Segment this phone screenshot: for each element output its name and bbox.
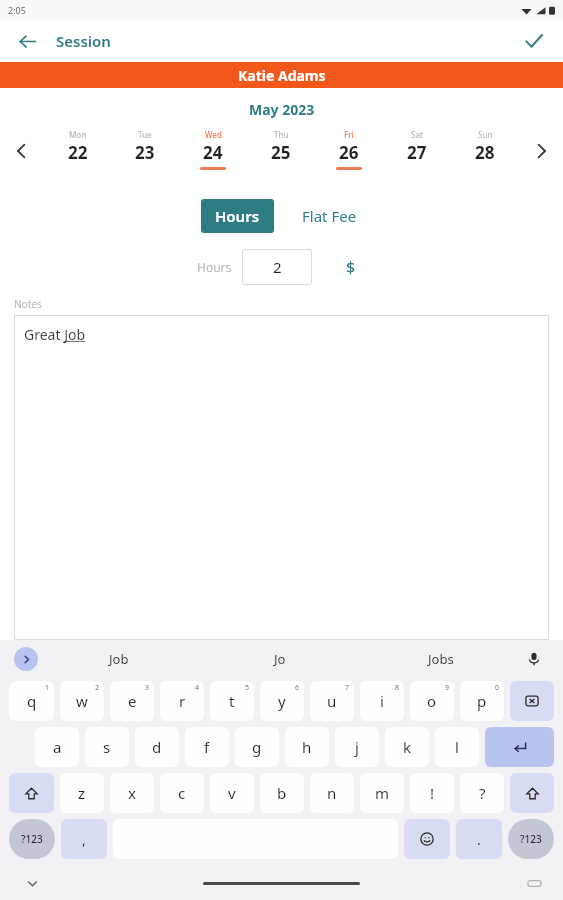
button[interactable]: n (310, 773, 354, 813)
button[interactable]: u (310, 681, 354, 721)
button[interactable]: q (9, 681, 54, 721)
staticText: x (128, 783, 136, 803)
staticText: 2 (273, 257, 282, 277)
button[interactable]: Flat Fee (296, 199, 363, 233)
button[interactable]: j (335, 727, 379, 767)
button[interactable]: a (35, 727, 79, 767)
staticText: q (27, 691, 37, 711)
button[interactable]: Enter (485, 727, 554, 767)
button[interactable]: Change keyboard (523, 872, 545, 894)
staticText: 2 (95, 683, 100, 693)
button[interactable]: Back (10, 24, 44, 58)
staticText: $ (346, 256, 356, 278)
button[interactable]: t (210, 681, 254, 721)
button[interactable]: Thu (247, 125, 315, 177)
button[interactable]: w (60, 681, 104, 721)
button[interactable]: Save (517, 24, 551, 58)
button[interactable]: Hours (201, 199, 274, 233)
staticText: 6 (295, 683, 300, 693)
staticText: 2:05 (8, 4, 26, 16)
staticText: 22 (68, 141, 88, 164)
button[interactable]: Voice input (521, 646, 547, 672)
staticText: e (128, 691, 137, 711)
staticText: n (327, 783, 337, 803)
staticText: 8 (395, 683, 400, 693)
button[interactable]: ?123 (508, 819, 554, 859)
button[interactable]: Great Job (14, 315, 549, 640)
button[interactable]: m (360, 773, 404, 813)
button[interactable]: z (60, 773, 104, 813)
staticText: Notes (14, 297, 42, 311)
button[interactable]: o (410, 681, 454, 721)
button[interactable]: ! (410, 773, 454, 813)
button[interactable]: Fri (315, 125, 383, 177)
button[interactable]: Jo (199, 640, 360, 678)
button[interactable]: Jobs (360, 640, 521, 678)
staticText: o (427, 691, 437, 711)
staticText: l (455, 737, 459, 757)
staticText: v (228, 783, 236, 803)
button[interactable]: s (85, 727, 129, 767)
staticText: 26 (339, 141, 359, 164)
button[interactable]: g (235, 727, 279, 767)
button[interactable]: Wed (179, 125, 247, 177)
button[interactable]: Job (38, 640, 199, 678)
button[interactable]: ?123 (9, 819, 55, 859)
button[interactable]: l (435, 727, 479, 767)
staticText: Job (109, 650, 129, 668)
button[interactable]: Shift (510, 773, 554, 813)
staticText: Jo (274, 650, 286, 668)
staticText: Sun (478, 129, 493, 140)
button[interactable]: f (185, 727, 229, 767)
staticText: ? (479, 783, 486, 803)
button[interactable]: Session (56, 31, 111, 51)
button[interactable]: h (285, 727, 329, 767)
staticText: Hours (197, 259, 232, 275)
staticText: 28 (475, 141, 495, 164)
button[interactable]: . (456, 819, 502, 859)
button[interactable]: d (135, 727, 179, 767)
staticText: Katie Adams (238, 66, 326, 85)
button[interactable]: c (160, 773, 204, 813)
button[interactable]: Mon (44, 125, 111, 177)
staticText: g (252, 737, 262, 757)
button[interactable]: Hide keyboard (20, 871, 44, 895)
button[interactable]: p (460, 681, 504, 721)
button[interactable]: v (210, 773, 254, 813)
button[interactable]: x (110, 773, 154, 813)
button[interactable]: y (260, 681, 304, 721)
staticText: b (277, 783, 287, 803)
staticText: Flat Fee (302, 206, 357, 226)
staticText: ?123 (520, 832, 542, 846)
staticText: p (477, 691, 487, 711)
button[interactable]: Currency (336, 252, 366, 282)
button[interactable]: k (385, 727, 429, 767)
button[interactable]: Sat (383, 125, 451, 177)
button[interactable]: Previous week (0, 125, 44, 177)
button[interactable]: Emoji (404, 819, 450, 859)
button[interactable]: Backspace (510, 681, 554, 721)
button[interactable]: 2 (242, 249, 312, 285)
staticText: 27 (407, 141, 427, 164)
button[interactable]: ? (460, 773, 504, 813)
button[interactable]: Tue (111, 125, 179, 177)
button[interactable]: i (360, 681, 404, 721)
button[interactable]: , (61, 819, 107, 859)
staticText: Hours (215, 206, 260, 226)
staticText: i (380, 691, 384, 711)
staticText: a (53, 737, 62, 757)
button[interactable]: Next week (519, 125, 563, 177)
button[interactable]: b (260, 773, 304, 813)
button[interactable]: e (110, 681, 154, 721)
button[interactable]: Sun (451, 125, 519, 177)
button[interactable]: Katie Adams (0, 62, 563, 88)
staticText: u (327, 691, 337, 711)
staticText: s (103, 737, 111, 757)
button[interactable]: r (160, 681, 204, 721)
button[interactable]: Expand suggestions (14, 647, 38, 671)
staticText: 4 (195, 683, 200, 693)
staticText: 7 (345, 683, 350, 693)
button[interactable]: Shift (9, 773, 54, 813)
staticText: t (229, 691, 235, 711)
